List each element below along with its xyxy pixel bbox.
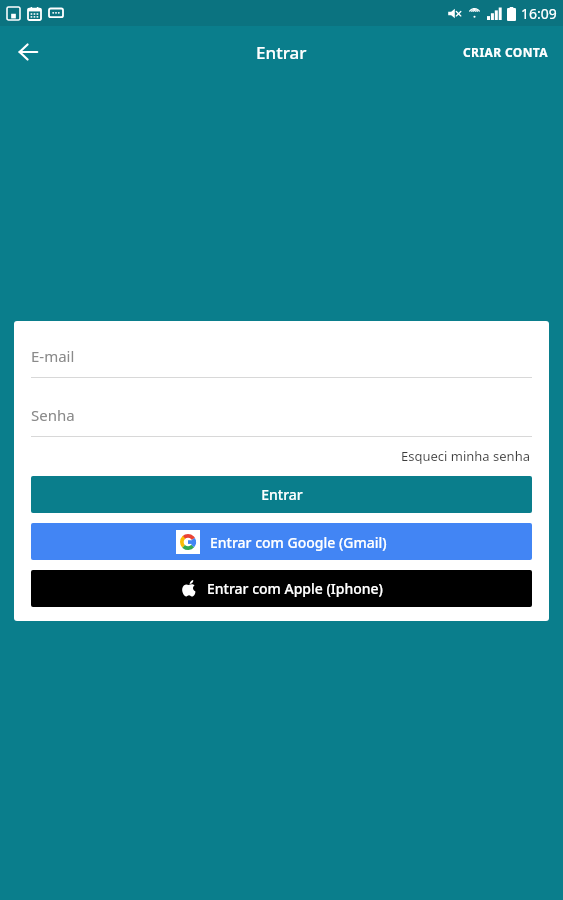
button[interactable]: Voltar	[6, 30, 50, 74]
button[interactable]: Entrar com Google (Gmail)	[31, 523, 532, 560]
staticText: E-mail	[31, 346, 75, 366]
button[interactable]: Entrar com Apple (Iphone)	[31, 570, 532, 607]
staticText: Entrar	[261, 485, 303, 504]
staticText: Entrar com Google (Gmail)	[210, 533, 387, 552]
button[interactable]: E-mail	[31, 335, 532, 377]
staticText: Senha	[31, 405, 75, 425]
staticText: 16:09	[521, 4, 557, 23]
staticText: Esqueci minha senha	[401, 447, 530, 465]
button[interactable]: Entrar	[31, 476, 532, 513]
button[interactable]: Senha	[31, 394, 532, 436]
button[interactable]: CRIAR CONTA	[455, 36, 557, 68]
button[interactable]: Esqueci minha senha	[399, 443, 532, 469]
staticText: Entrar	[256, 41, 307, 64]
staticText: Entrar com Apple (Iphone)	[207, 579, 383, 598]
staticText: CRIAR CONTA	[463, 44, 549, 60]
